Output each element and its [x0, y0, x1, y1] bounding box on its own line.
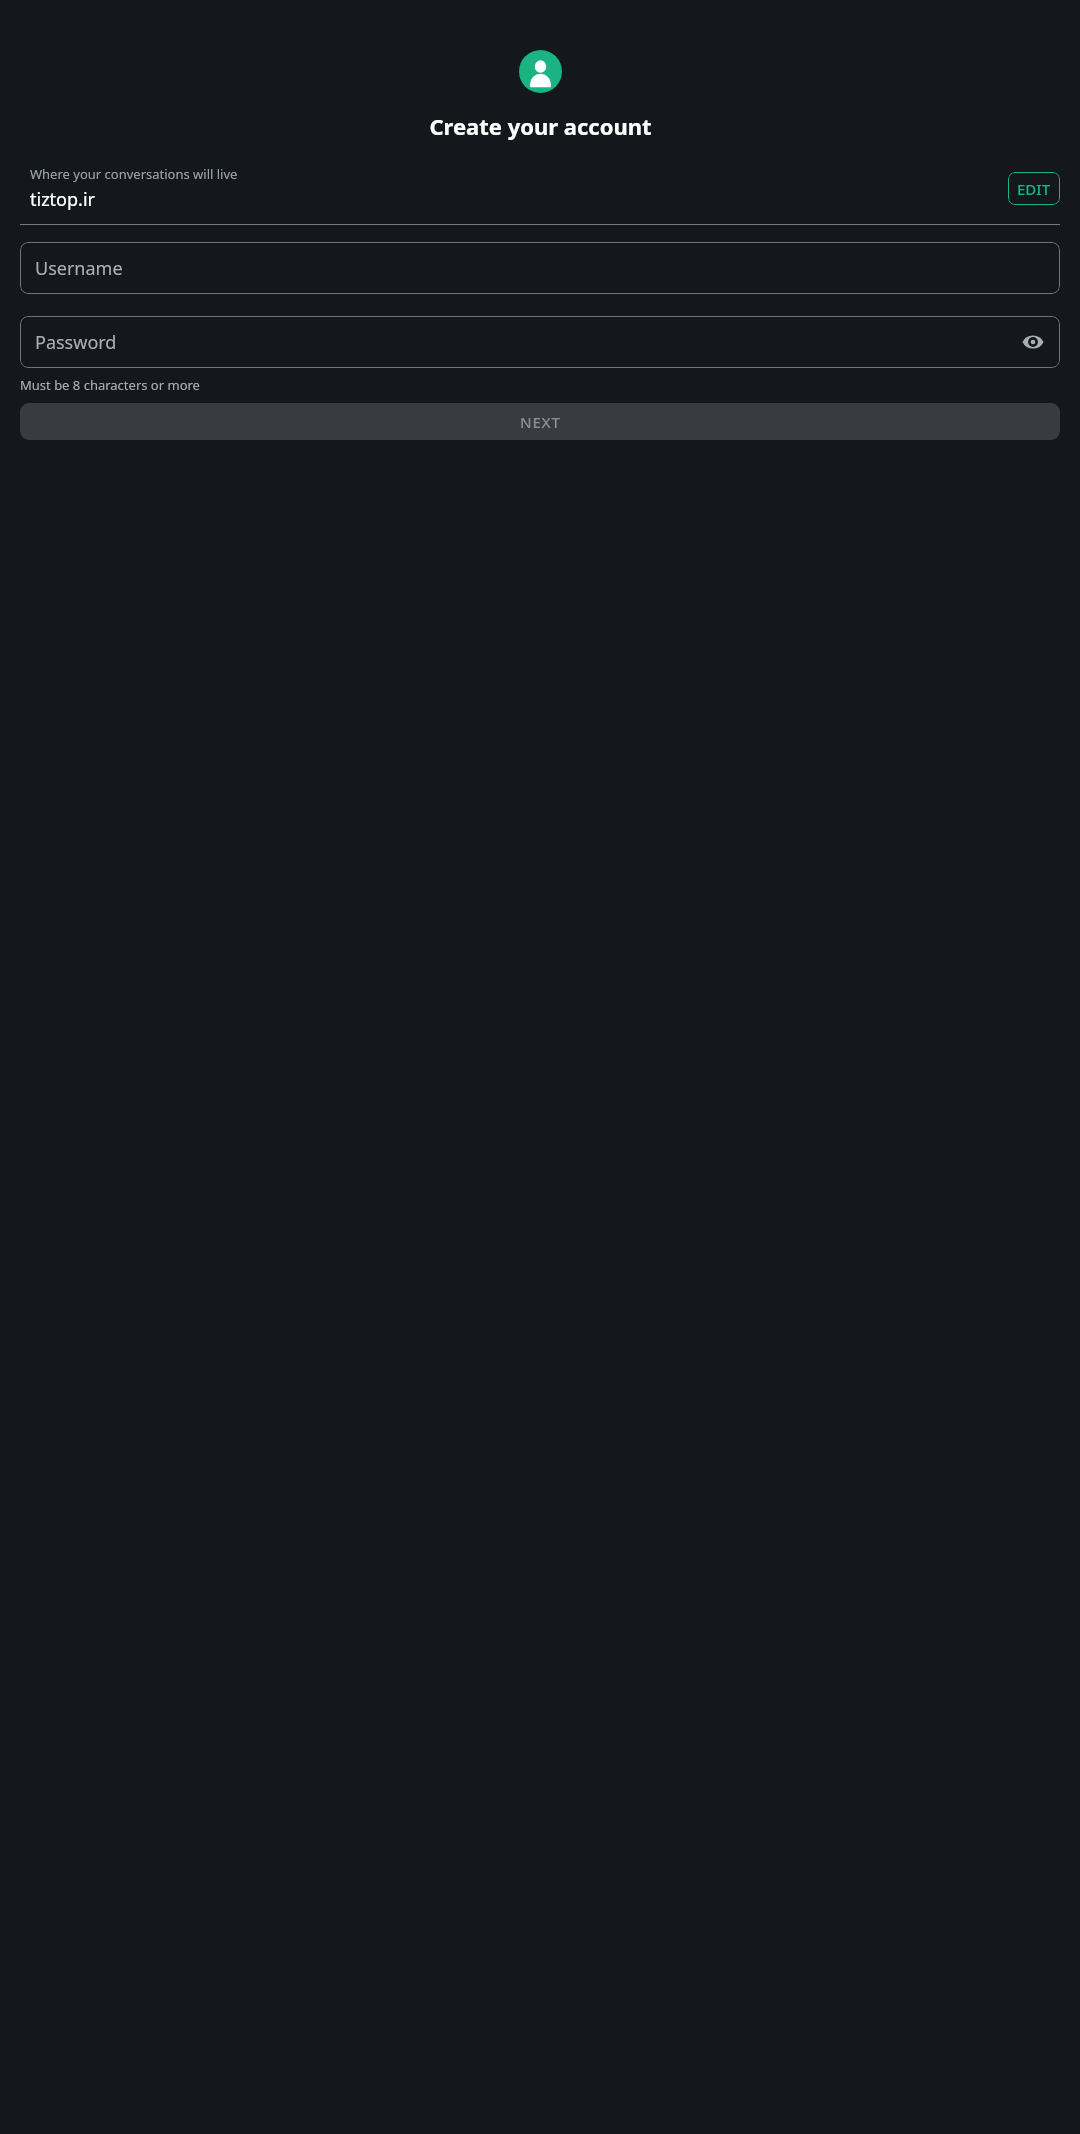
staticText: Where your conversations will live [30, 165, 238, 183]
button[interactable]: Username [20, 242, 1060, 294]
staticText: EDIT [1017, 179, 1051, 199]
staticText: Must be 8 characters or more [20, 376, 200, 394]
button[interactable]: Password [20, 316, 1060, 368]
button[interactable]: NEXT [20, 403, 1060, 440]
button[interactable]: Show password [1018, 327, 1048, 357]
staticText: Password [35, 330, 117, 355]
button[interactable]: EDIT [1008, 172, 1060, 205]
staticText: Create your account [429, 111, 652, 141]
staticText: tiztop.ir [30, 187, 95, 212]
staticText: NEXT [520, 412, 561, 432]
staticText: Username [35, 256, 123, 281]
